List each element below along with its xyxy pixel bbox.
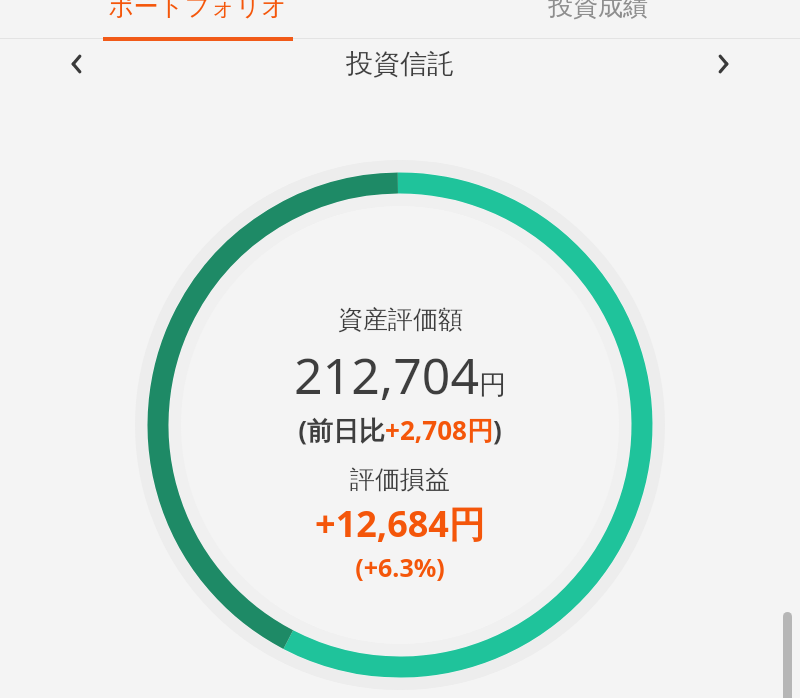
staticText: (前日比+2,708円) (298, 412, 502, 448)
staticText: ポートフォリオ (108, 0, 287, 22)
button[interactable]: 前へ (50, 40, 106, 88)
button[interactable]: ポートフォリオ (72, 0, 322, 27)
staticText: 評価損益 (350, 464, 450, 495)
button[interactable]: 次へ (694, 40, 750, 88)
staticText: (+6.3%) (355, 550, 445, 584)
staticText: 212,704円 (294, 341, 506, 409)
staticText: +12,684円 (315, 499, 485, 548)
staticText: 投資成績 (548, 0, 648, 22)
button[interactable]: 投資成績 (478, 0, 718, 27)
staticText: 資産評価額 (338, 304, 463, 335)
staticText: 投資信託 (346, 47, 454, 81)
